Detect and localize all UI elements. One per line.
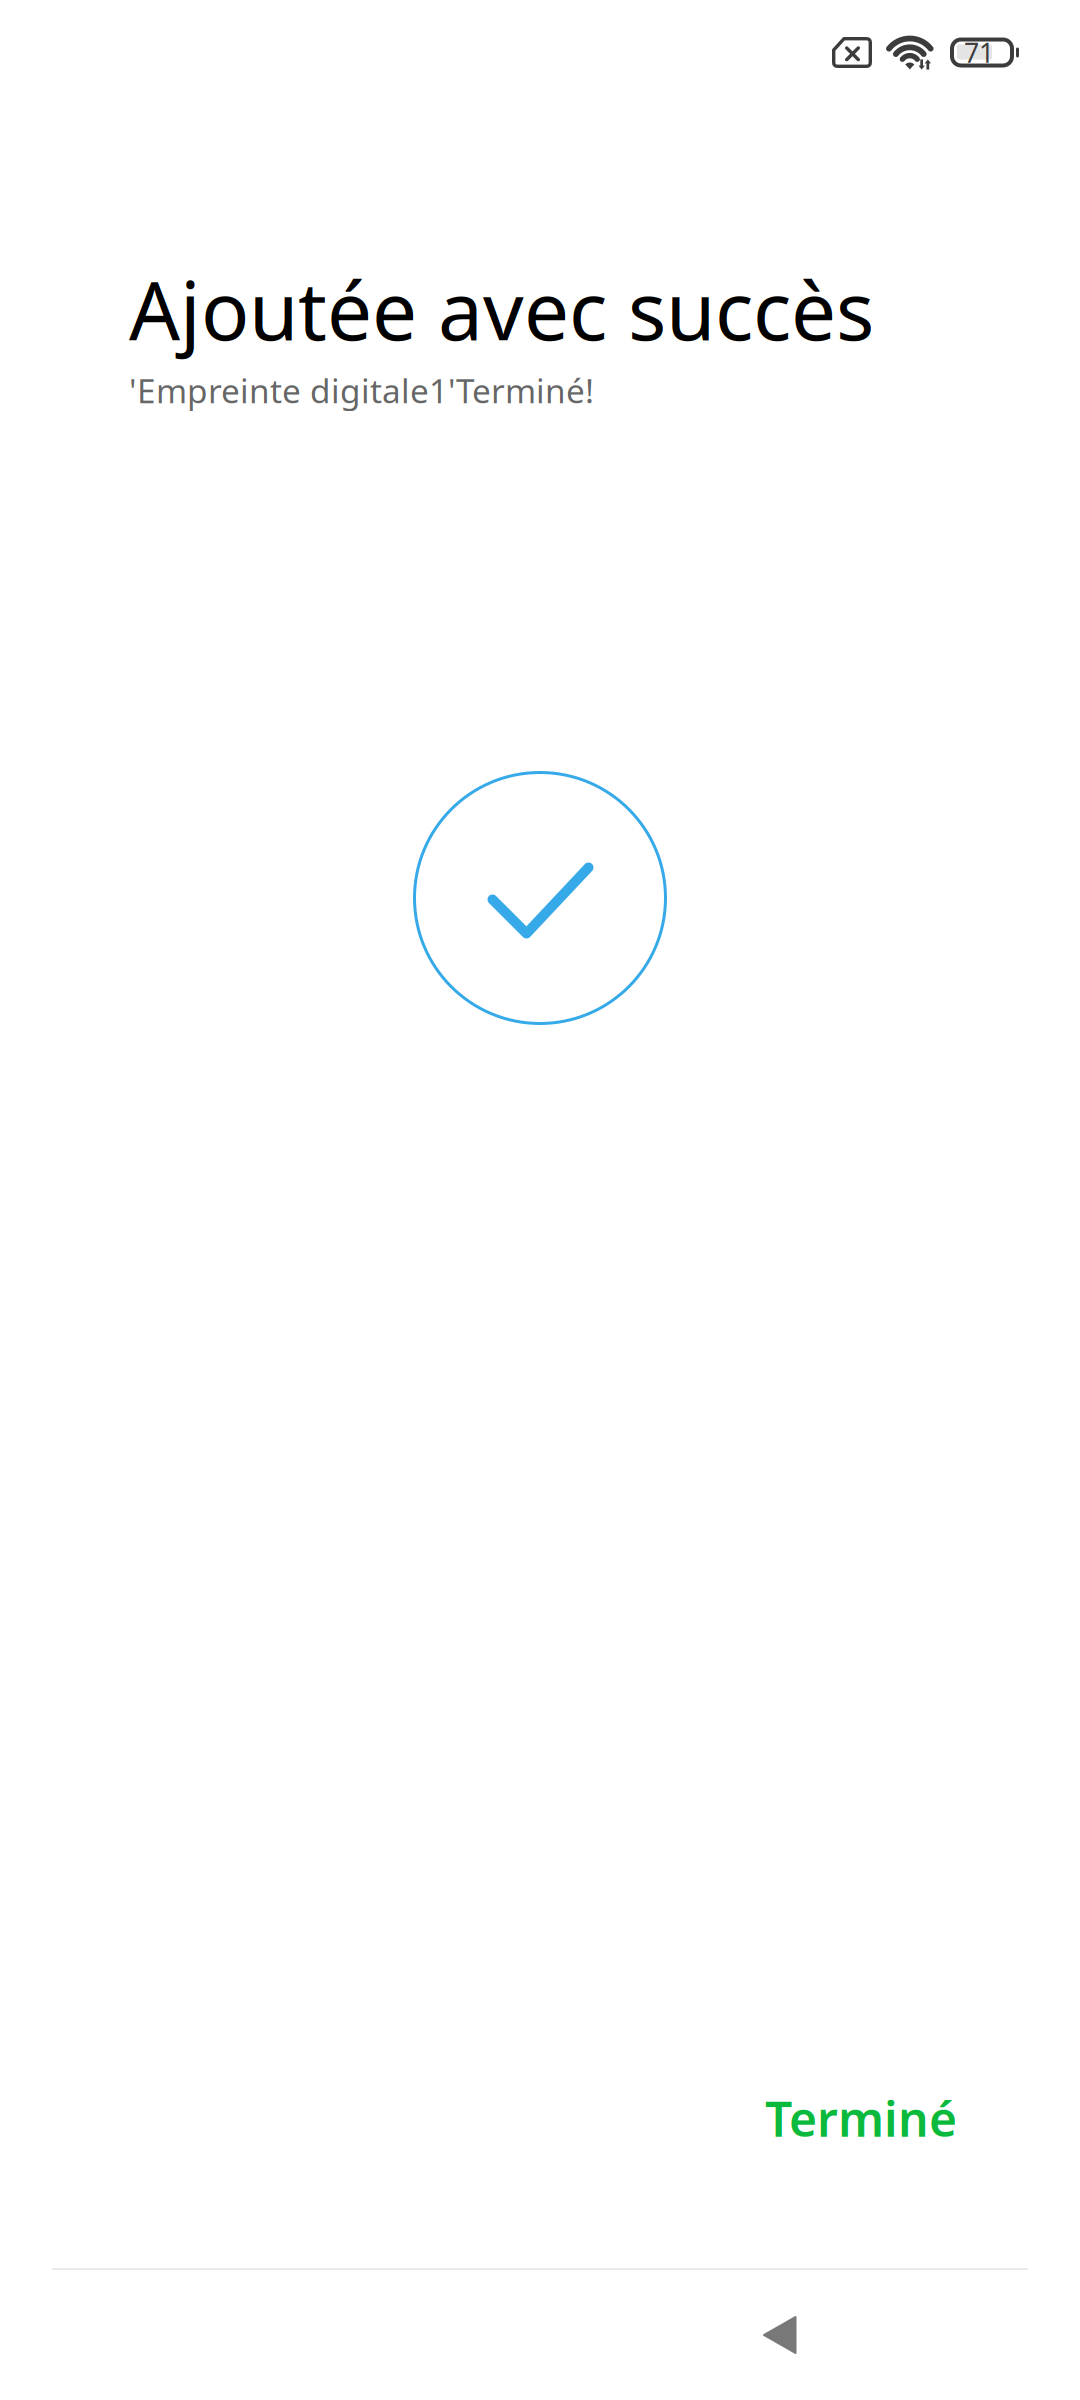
staticText: 71 — [964, 35, 994, 70]
staticText: 'Empreinte digitale1'Terminé! — [129, 368, 594, 412]
staticText: Terminé — [765, 2086, 957, 2150]
button[interactable]: Terminé — [731, 2062, 991, 2174]
staticText: Ajoutée avec succès — [129, 256, 874, 362]
button[interactable]: Back — [725, 2280, 835, 2390]
